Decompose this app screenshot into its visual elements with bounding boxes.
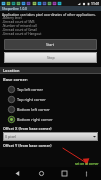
staticText: -Battery level (2, 16, 22, 20)
staticText: Base corner: (3, 77, 28, 82)
staticText: -Unread count of Hangout (2, 32, 42, 36)
staticText: set on at corner (75, 162, 99, 166)
staticText: Application can takes pixel coordinates … (2, 12, 96, 16)
staticText: Stop (47, 55, 55, 60)
staticText: Offset X (from base corner) (3, 126, 52, 131)
staticText: -Number of missed call (2, 24, 37, 28)
staticText: Offset Y (from base corner) (3, 143, 52, 148)
staticText: 0 pixel (5, 134, 16, 139)
button[interactable]: Top left corner (0, 84, 101, 94)
button[interactable]: Recent apps (57, 167, 71, 180)
staticText: Start (46, 42, 55, 47)
button[interactable]: Back (10, 167, 24, 180)
staticText: Location (3, 68, 20, 73)
button[interactable]: Home (34, 167, 48, 180)
button[interactable]: Stop (4, 52, 97, 63)
staticText: 11:01 (91, 1, 100, 6)
staticText: -Unread count of Gmail (2, 28, 37, 32)
staticText: Bottom left corner (17, 107, 50, 112)
staticText: Top left corner (17, 87, 43, 92)
staticText: -Unread count of SMS (2, 20, 35, 24)
staticText: Top right corner (17, 97, 46, 102)
staticText: Bottom right corner (17, 117, 53, 122)
staticText: Shoponline 1.0.0 (2, 7, 27, 11)
button[interactable]: Bottom right corner (0, 114, 101, 124)
button[interactable]: Bottom left corner (0, 104, 101, 114)
button[interactable]: 0 pixel (3, 132, 98, 141)
button[interactable]: More options (81, 169, 91, 179)
button[interactable]: Start (4, 39, 97, 50)
button[interactable]: Top right corner (0, 94, 101, 104)
